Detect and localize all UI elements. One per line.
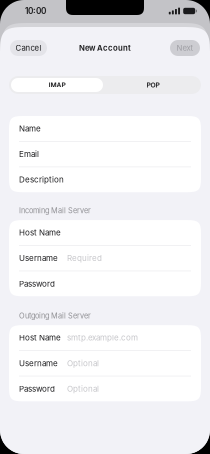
staticText: New Account bbox=[79, 43, 131, 53]
staticText: Password bbox=[19, 279, 55, 289]
staticText: Next bbox=[176, 43, 193, 53]
staticText: 10:00 bbox=[25, 6, 46, 16]
staticText: Email bbox=[19, 149, 39, 159]
staticText: Required bbox=[67, 253, 102, 263]
button[interactable]: Cancel bbox=[10, 40, 47, 56]
staticText: smtp.example.com bbox=[67, 333, 138, 342]
staticText: Username bbox=[19, 358, 58, 368]
staticText: Cancel bbox=[15, 43, 41, 53]
staticText: Name bbox=[19, 124, 41, 133]
staticText: Optional bbox=[67, 384, 99, 394]
staticText: Description bbox=[19, 175, 64, 185]
staticText: Password bbox=[19, 384, 55, 394]
staticText: Host Name bbox=[19, 333, 61, 342]
button[interactable]: Next bbox=[170, 40, 200, 56]
staticText: IMAP bbox=[48, 81, 65, 89]
staticText: Incoming Mail Server bbox=[19, 206, 91, 215]
staticText: Username bbox=[19, 253, 58, 263]
staticText: POP bbox=[146, 81, 159, 89]
button[interactable]: IMAP bbox=[9, 76, 105, 94]
staticText: Optional bbox=[67, 358, 99, 368]
button[interactable]: POP bbox=[105, 76, 201, 94]
staticText: Host Name bbox=[19, 228, 61, 237]
staticText: Outgoing Mail Server bbox=[19, 311, 91, 320]
